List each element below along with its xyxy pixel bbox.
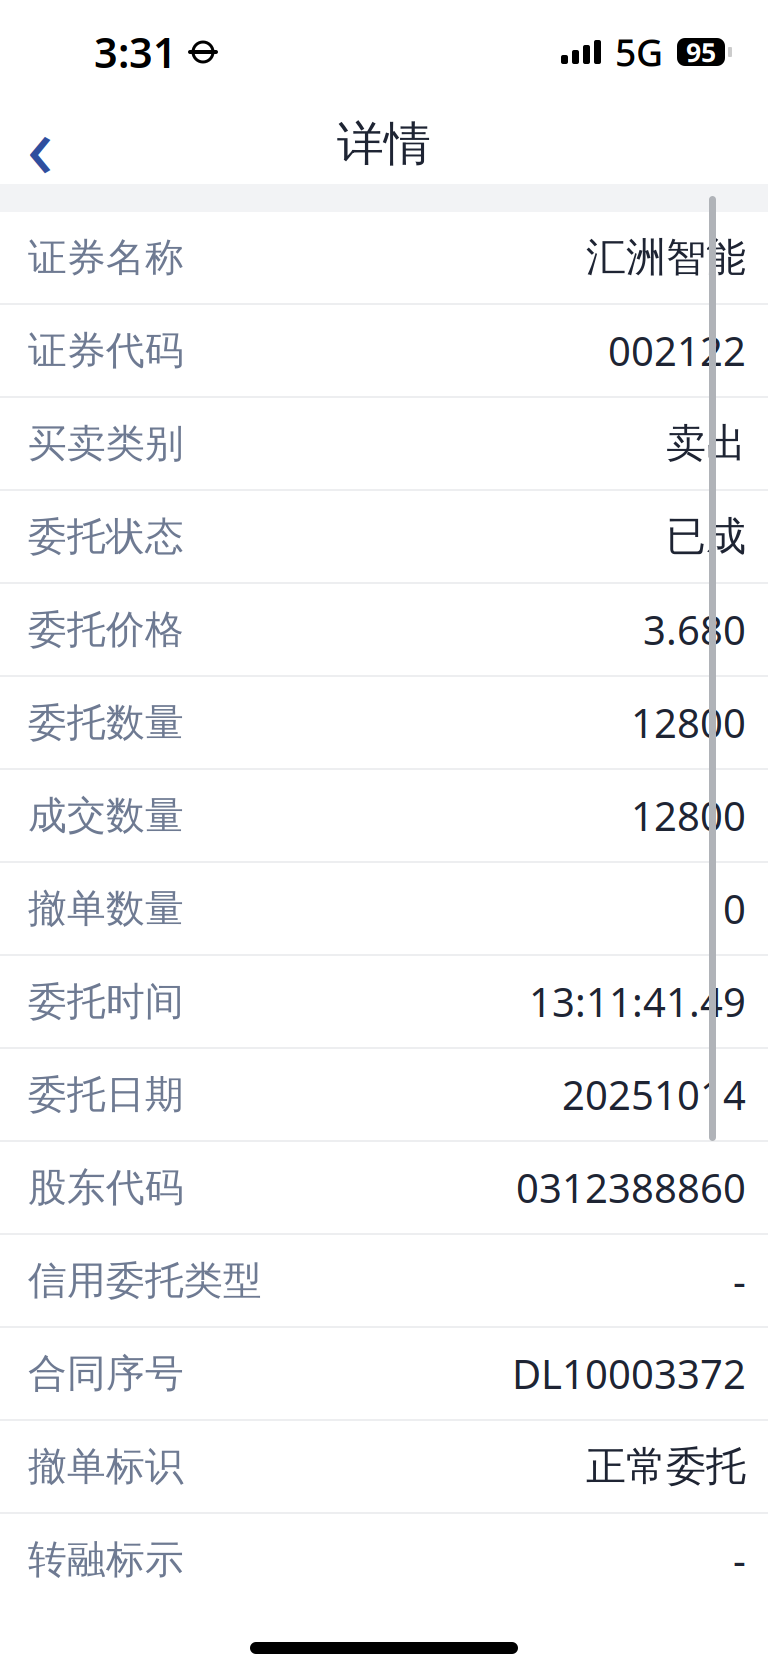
button[interactable]: 买卖类别 bbox=[0, 398, 768, 489]
staticText: 买卖类别 bbox=[28, 420, 184, 467]
staticText: 正常委托 bbox=[586, 1442, 746, 1491]
button[interactable]: 股东代码 bbox=[0, 1142, 768, 1233]
staticText: 转融标示 bbox=[28, 1536, 184, 1583]
staticText: ‹ bbox=[26, 86, 53, 202]
button[interactable]: 转融标示 bbox=[0, 1514, 768, 1605]
staticText: 委托数量 bbox=[28, 699, 184, 746]
button[interactable]: 返回 bbox=[0, 104, 80, 184]
staticText: 卖出 bbox=[666, 419, 746, 468]
button[interactable]: 证券代码 bbox=[0, 305, 768, 396]
button[interactable]: 证券名称 bbox=[0, 212, 768, 303]
staticText: 5G bbox=[615, 27, 663, 77]
staticText: 3:31 bbox=[94, 25, 177, 79]
staticText: 95 bbox=[686, 34, 716, 70]
button[interactable]: 委托时间 bbox=[0, 956, 768, 1047]
staticText: 委托价格 bbox=[28, 606, 184, 653]
staticText: 详情 bbox=[337, 115, 431, 173]
staticText: 20251014 bbox=[562, 1068, 746, 1121]
staticText: 证券名称 bbox=[28, 234, 184, 281]
button[interactable]: 撤单标识 bbox=[0, 1421, 768, 1512]
button[interactable]: 撤单数量 bbox=[0, 863, 768, 954]
button[interactable]: 委托价格 bbox=[0, 584, 768, 675]
staticText: 0312388860 bbox=[516, 1161, 746, 1214]
staticText: 证券代码 bbox=[28, 327, 184, 374]
staticText: 股东代码 bbox=[28, 1164, 184, 1211]
staticText: - bbox=[733, 1254, 746, 1307]
button[interactable]: 信用委托类型 bbox=[0, 1235, 768, 1326]
button[interactable]: 委托数量 bbox=[0, 677, 768, 768]
staticText: 撤单标识 bbox=[28, 1443, 184, 1490]
staticText: 委托时间 bbox=[28, 978, 184, 1025]
staticText: 已成 bbox=[666, 512, 746, 561]
staticText: 12800 bbox=[631, 789, 746, 842]
staticText: 撤单数量 bbox=[28, 885, 184, 932]
staticText: 信用委托类型 bbox=[28, 1257, 262, 1304]
staticText: 002122 bbox=[608, 324, 746, 377]
staticText: 13:11:41.49 bbox=[529, 975, 746, 1028]
staticText: 12800 bbox=[631, 696, 746, 749]
staticText: 成交数量 bbox=[28, 792, 184, 839]
button[interactable]: 合同序号 bbox=[0, 1328, 768, 1419]
staticText: 合同序号 bbox=[28, 1350, 184, 1397]
staticText: - bbox=[733, 1533, 746, 1586]
staticText: 汇洲智能 bbox=[586, 233, 746, 282]
staticText: 3.680 bbox=[643, 603, 746, 656]
staticText: 0 bbox=[723, 882, 746, 935]
staticText: 委托状态 bbox=[28, 513, 184, 560]
staticText: 委托日期 bbox=[28, 1071, 184, 1118]
button[interactable]: 委托状态 bbox=[0, 491, 768, 582]
button[interactable]: 委托日期 bbox=[0, 1049, 768, 1140]
button[interactable]: 成交数量 bbox=[0, 770, 768, 861]
staticText: DL10003372 bbox=[512, 1347, 746, 1400]
